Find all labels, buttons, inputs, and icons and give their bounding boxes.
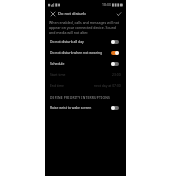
staticText: Do not disturb all day [50, 39, 111, 44]
staticText: 10:33 [102, 2, 111, 7]
staticText: next day at 07:00 [94, 83, 121, 88]
button[interactable]: Do not disturb when not wearing [45, 47, 126, 58]
button[interactable]: Do not disturb all day [45, 36, 126, 47]
staticText: Schedule [50, 61, 111, 66]
button[interactable]: Done [115, 10, 122, 17]
button[interactable]: Schedule [45, 58, 126, 69]
staticText: Do not disturb [58, 11, 86, 17]
staticText: End time [50, 83, 94, 88]
button[interactable]: Close [49, 10, 56, 17]
staticText: Start time [50, 72, 112, 77]
staticText: Raise wrist to wake screen [50, 105, 111, 110]
staticText: When enabled, calls and messages will no… [49, 20, 122, 35]
button[interactable]: Raise wrist to wake screen [45, 102, 126, 113]
button[interactable]: End time [45, 80, 126, 91]
staticText: Do not disturb when not wearing [50, 50, 111, 55]
staticText: 23:00 [112, 72, 121, 77]
staticText: DEFINE PRIORITY INTERRUPTIONS [50, 95, 110, 99]
button[interactable]: Start time [45, 69, 126, 80]
